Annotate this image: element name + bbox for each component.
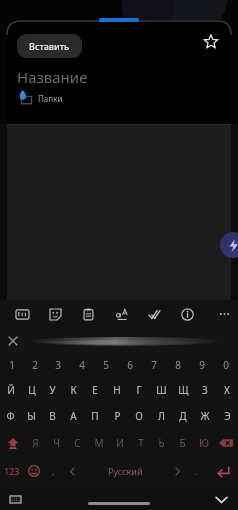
staticText: А [70, 409, 77, 423]
staticText: 5 [103, 358, 109, 372]
button[interactable]: Л [150, 403, 172, 429]
button[interactable]: Р [106, 403, 128, 429]
staticText: Ш [156, 383, 167, 397]
staticText: Й [7, 383, 15, 397]
staticText: З [202, 383, 208, 397]
staticText: 8 [175, 358, 181, 372]
button[interactable]: Switch keyboard [6, 490, 24, 508]
button[interactable]: 9 [190, 354, 214, 376]
button[interactable]: Г [128, 376, 150, 403]
button[interactable]: Assistant [220, 232, 238, 258]
button[interactable]: Backspace [214, 429, 238, 456]
button[interactable]: 8 [166, 354, 190, 376]
staticText: И [116, 436, 124, 450]
button[interactable]: Enter [206, 456, 238, 486]
button[interactable]: А [63, 403, 84, 429]
staticText: 0 [223, 358, 229, 372]
staticText: 1 [9, 358, 15, 372]
button[interactable]: Shift [0, 429, 25, 456]
staticText: 3 [55, 358, 61, 372]
button[interactable]: Ж [194, 403, 216, 429]
staticText: Э [224, 409, 231, 423]
staticText: , [52, 464, 55, 478]
button[interactable]: 123 [0, 456, 24, 486]
button[interactable]: Ш [150, 376, 172, 403]
button[interactable]: Я [25, 429, 46, 456]
button[interactable]: Русский [82, 456, 168, 486]
button[interactable]: М [88, 429, 109, 456]
button[interactable]: Clipboard [72, 300, 105, 328]
button[interactable]: 0 [214, 354, 238, 376]
button[interactable]: Hide keyboard [211, 489, 231, 509]
button[interactable]: Д [172, 403, 194, 429]
button[interactable]: GIF [6, 300, 39, 328]
button[interactable]: 4 [70, 354, 94, 376]
button[interactable]: Б [172, 429, 193, 456]
button[interactable]: У [42, 376, 63, 403]
button[interactable]: И [109, 429, 130, 456]
staticText: 123 [4, 465, 20, 477]
button[interactable]: Previous [63, 456, 82, 486]
button[interactable]: Н [106, 376, 128, 403]
staticText: Папки [38, 93, 63, 104]
staticText: У [49, 383, 56, 397]
button[interactable]: Translate [105, 300, 138, 328]
staticText: Ю [199, 436, 209, 450]
button[interactable]: 7 [142, 354, 166, 376]
button[interactable]: Т [130, 429, 151, 456]
button[interactable]: Ч [46, 429, 67, 456]
button[interactable]: 1 [0, 354, 23, 376]
button[interactable]: Й [0, 376, 21, 403]
button[interactable]: , [44, 456, 63, 486]
button[interactable]: Х [216, 376, 238, 403]
button[interactable]: Close suggestions [4, 332, 22, 350]
button[interactable]: Е [84, 376, 106, 403]
staticText: 6 [127, 358, 133, 372]
button[interactable]: Ы [21, 403, 42, 429]
button[interactable]: Stickers [39, 300, 72, 328]
staticText: Д [179, 409, 187, 423]
staticText: 9 [199, 358, 205, 372]
button[interactable]: Э [216, 403, 238, 429]
staticText: 4 [79, 358, 85, 372]
button[interactable]: 2 [23, 354, 46, 376]
button[interactable]: Папки [17, 89, 63, 107]
button[interactable]: 3 [46, 354, 70, 376]
staticText: Ц [28, 383, 36, 397]
button[interactable]: Щ [172, 376, 194, 403]
staticText: Ь [158, 436, 165, 450]
button[interactable]: 5 [94, 354, 118, 376]
button[interactable]: З [194, 376, 216, 403]
staticText: П [91, 409, 99, 423]
button[interactable]: Вставить [17, 34, 82, 58]
staticText: Щ [178, 383, 189, 397]
button[interactable]: . [187, 456, 206, 486]
button[interactable]: Ц [21, 376, 42, 403]
staticText: . [195, 464, 198, 478]
button[interactable]: Info [171, 300, 204, 328]
button[interactable]: Ь [151, 429, 172, 456]
button[interactable]: More options [204, 300, 232, 328]
staticText: В [49, 409, 56, 423]
button[interactable]: Favorite [199, 30, 223, 54]
staticText: Е [92, 383, 98, 397]
button[interactable]: Ф [0, 403, 21, 429]
staticText: 7 [151, 358, 157, 372]
staticText: Название [17, 67, 88, 87]
button[interactable]: Ю [193, 429, 214, 456]
staticText: Л [158, 409, 165, 423]
button[interactable]: Emoji [24, 456, 44, 486]
staticText: Ы [27, 409, 36, 423]
staticText: Г [136, 383, 142, 397]
staticText: Ч [53, 436, 60, 450]
staticText: Ж [200, 409, 210, 423]
button[interactable]: К [63, 376, 84, 403]
button[interactable]: П [84, 403, 106, 429]
button[interactable]: Next [168, 456, 187, 486]
button[interactable]: В [42, 403, 63, 429]
button[interactable]: С [67, 429, 88, 456]
button[interactable]: О [128, 403, 150, 429]
button[interactable]: Spell check [138, 300, 171, 328]
staticText: К [70, 383, 77, 397]
button[interactable]: 6 [118, 354, 142, 376]
